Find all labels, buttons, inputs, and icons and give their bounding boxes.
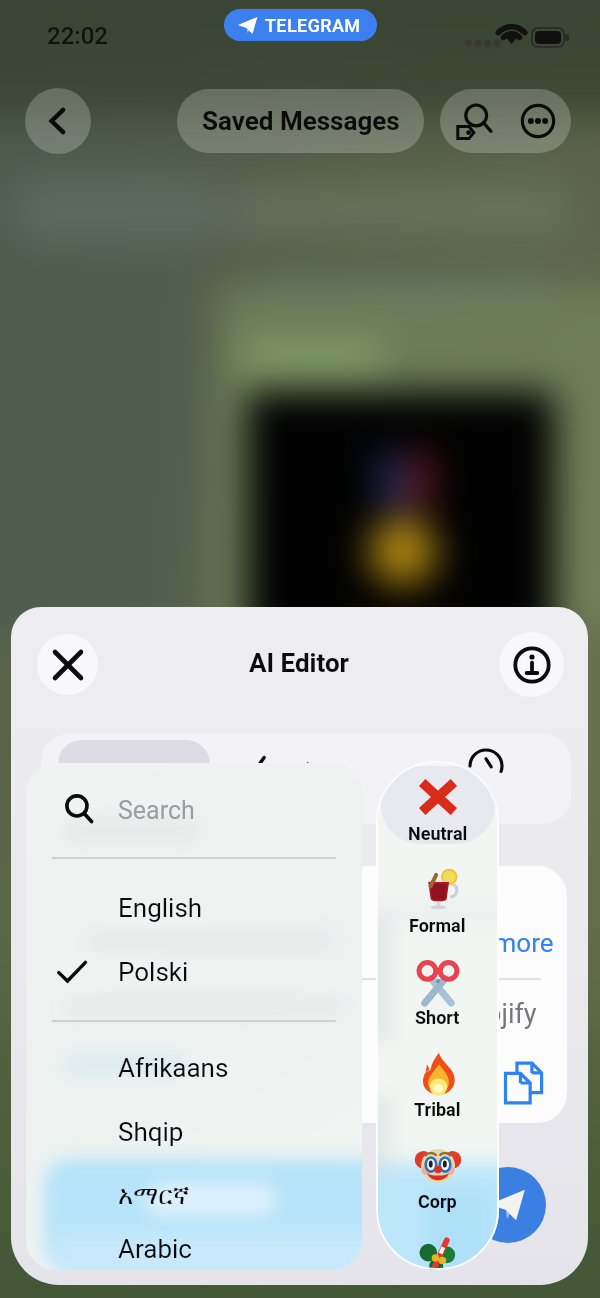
button[interactable]: Neutral bbox=[376, 775, 499, 867]
staticText: Saved Messages bbox=[202, 106, 400, 136]
button[interactable]: Formal bbox=[376, 867, 499, 959]
staticText: Polski bbox=[118, 957, 189, 987]
button[interactable]: Search bbox=[26, 763, 362, 857]
button[interactable]: Tribal bbox=[376, 1051, 499, 1143]
staticText: Arabic bbox=[118, 1234, 192, 1264]
staticText: Short bbox=[415, 1007, 460, 1028]
staticText: Corp bbox=[418, 1191, 457, 1212]
staticText: English bbox=[118, 893, 203, 923]
button[interactable]: Polski bbox=[26, 940, 362, 1004]
staticText: Shqip bbox=[118, 1117, 184, 1147]
button[interactable]: Shqip bbox=[26, 1100, 362, 1164]
button[interactable]: Back bbox=[25, 88, 91, 154]
staticText: Search bbox=[118, 796, 195, 825]
button[interactable]: More options bbox=[505, 89, 571, 153]
button[interactable]: Close bbox=[37, 634, 98, 695]
button[interactable]: Search bbox=[440, 89, 505, 153]
staticText: Show more bbox=[423, 928, 554, 958]
button[interactable]: አማርኛ bbox=[26, 1164, 362, 1228]
button[interactable]: Saved Messages bbox=[177, 89, 424, 153]
staticText: 22:02 bbox=[47, 22, 108, 50]
staticText: Afrikaans bbox=[118, 1053, 229, 1083]
staticText: Tribal bbox=[414, 1099, 461, 1120]
button[interactable]: Rewrite bbox=[58, 740, 210, 818]
button[interactable]: Send bbox=[470, 1167, 546, 1243]
button[interactable]: Xmas bbox=[376, 1235, 499, 1270]
button[interactable]: Corp bbox=[376, 1143, 499, 1235]
button[interactable]: English bbox=[26, 876, 362, 940]
staticText: TELEGRAM bbox=[265, 15, 361, 36]
staticText: Formal bbox=[409, 915, 466, 936]
button[interactable]: Arabic bbox=[26, 1228, 362, 1270]
staticText: AI Editor bbox=[249, 648, 350, 678]
staticText: አማርኛ bbox=[118, 1183, 190, 1209]
button[interactable]: Info bbox=[499, 632, 564, 697]
button[interactable]: Short bbox=[376, 959, 499, 1051]
staticText: Emojify bbox=[447, 998, 537, 1030]
staticText: Neutral bbox=[408, 823, 468, 844]
button[interactable]: Afrikaans bbox=[26, 1036, 362, 1100]
